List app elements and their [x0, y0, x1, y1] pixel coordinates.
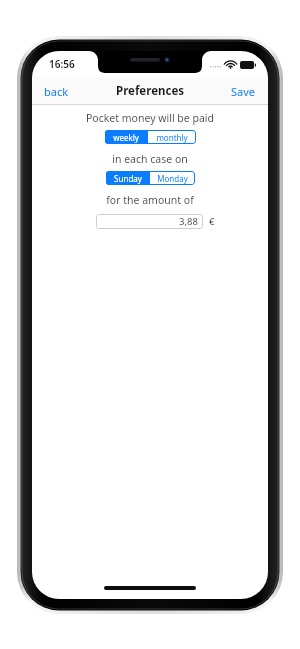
- button[interactable]: monthly: [148, 130, 196, 144]
- staticText: weekly: [113, 132, 139, 143]
- button[interactable]: Sunday: [106, 171, 149, 185]
- other: Wi-Fi signal: [225, 60, 236, 69]
- staticText: Save: [231, 84, 256, 99]
- staticText: Pocket money will be paid: [86, 111, 214, 125]
- staticText: Sunday: [114, 173, 142, 184]
- button[interactable]: Save: [219, 79, 268, 104]
- button[interactable]: back: [32, 79, 81, 104]
- staticText: Preferences: [116, 83, 185, 99]
- staticText: €: [209, 215, 215, 228]
- staticText: monthly: [156, 132, 188, 143]
- staticText: for the amount of: [106, 193, 194, 207]
- staticText: in each case on: [112, 152, 188, 166]
- staticText: back: [44, 84, 69, 99]
- button[interactable]: 3,88: [96, 214, 203, 229]
- staticText: Monday: [157, 173, 188, 184]
- staticText: 16:56: [49, 57, 75, 71]
- button[interactable]: weekly: [105, 130, 147, 144]
- button[interactable]: Monday: [150, 171, 195, 185]
- other: Battery: [240, 61, 256, 69]
- staticText: 3,88: [179, 215, 198, 228]
